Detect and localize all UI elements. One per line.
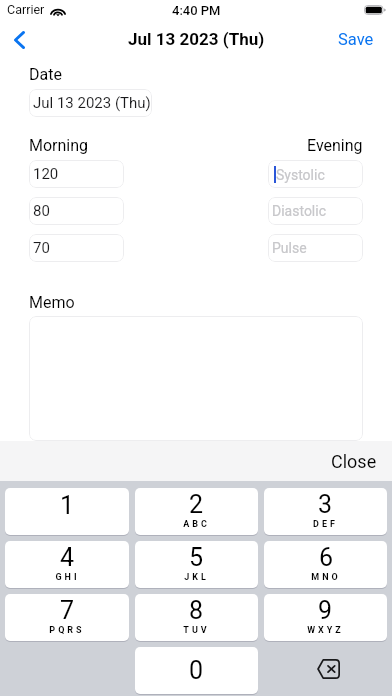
- button[interactable]: Close: [312, 443, 392, 480]
- button[interactable]: 70: [29, 234, 124, 262]
- staticText: Date: [29, 65, 62, 84]
- staticText: 8: [189, 596, 204, 625]
- staticText: PQRS: [49, 625, 85, 636]
- staticText: Carrier: [7, 2, 45, 17]
- staticText: Pulse: [272, 240, 307, 256]
- button[interactable]: Jul 13 2023 (Thu): [29, 89, 152, 117]
- staticText: 0: [189, 656, 204, 685]
- staticText: 9: [318, 596, 333, 625]
- button[interactable]: 2: [135, 488, 258, 535]
- staticText: 4:40 PM: [172, 3, 221, 18]
- staticText: Systolic: [276, 167, 325, 183]
- staticText: 3: [318, 490, 333, 519]
- staticText: ABC: [183, 519, 210, 530]
- button[interactable]: Delete: [264, 647, 387, 694]
- staticText: Save: [338, 30, 374, 49]
- staticText: TUV: [183, 625, 210, 636]
- staticText: Evening: [307, 136, 363, 155]
- staticText: Close: [331, 451, 377, 472]
- button[interactable]: Diastolic: [268, 197, 363, 225]
- staticText: Morning: [29, 136, 89, 155]
- button[interactable]: Back: [6, 26, 32, 52]
- button[interactable]: 7: [5, 594, 129, 641]
- button[interactable]: Save: [320, 23, 392, 54]
- button[interactable]: 6: [264, 541, 387, 588]
- staticText: 4: [60, 543, 75, 572]
- staticText: Memo: [29, 293, 75, 312]
- staticText: 120: [33, 165, 59, 183]
- staticText: 1: [60, 491, 75, 520]
- staticText: 2: [189, 490, 204, 519]
- staticText: WXYZ: [307, 625, 344, 636]
- staticText: DEF: [313, 519, 338, 530]
- staticText: 6: [319, 543, 334, 572]
- button[interactable]: 5: [135, 541, 258, 588]
- button[interactable]: 8: [135, 594, 258, 641]
- staticText: 70: [33, 239, 50, 257]
- button[interactable]: Pulse: [268, 234, 363, 262]
- button[interactable]: 1: [5, 488, 129, 535]
- staticText: Diastolic: [272, 203, 326, 219]
- button[interactable]: 4: [5, 541, 129, 588]
- staticText: Jul 13 2023 (Thu): [33, 94, 151, 112]
- staticText: 80: [33, 202, 50, 220]
- button[interactable]: 80: [29, 197, 124, 225]
- button[interactable]: 9: [264, 594, 387, 641]
- button[interactable]: Systolic: [268, 160, 363, 188]
- staticText: Jul 13 2023 (Thu): [128, 29, 265, 49]
- staticText: 7: [60, 596, 75, 625]
- button[interactable]: 3: [264, 488, 387, 535]
- staticText: GHI: [55, 572, 80, 583]
- button[interactable]: 0: [135, 647, 258, 694]
- staticText: 5: [189, 543, 204, 572]
- staticText: MNO: [311, 572, 341, 583]
- staticText: JKL: [184, 572, 209, 583]
- button[interactable]: 120: [29, 160, 124, 188]
